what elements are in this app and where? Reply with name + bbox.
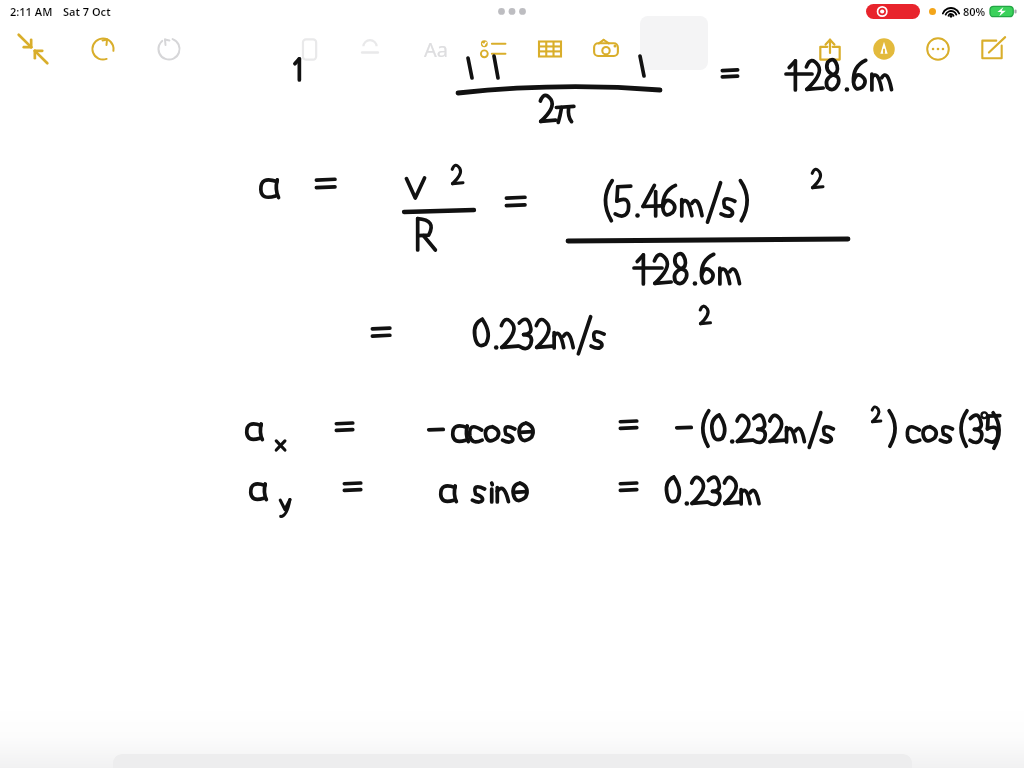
button[interactable]: Page style bbox=[288, 27, 332, 71]
button[interactable]: Checklist bbox=[472, 27, 516, 71]
staticText: Sat 7 Oct bbox=[63, 4, 111, 19]
button[interactable]: Undo bbox=[81, 27, 125, 71]
button[interactable]: Stop screen recording bbox=[866, 4, 920, 19]
button[interactable]: More options bbox=[916, 27, 960, 71]
button[interactable]: Collapse bbox=[11, 27, 55, 71]
button[interactable]: Camera bbox=[584, 27, 628, 71]
staticText: Aa bbox=[424, 36, 448, 63]
staticText: 80% bbox=[963, 4, 986, 19]
button[interactable]: Markup tools bbox=[862, 27, 906, 71]
button[interactable]: Table bbox=[528, 27, 572, 71]
button[interactable]: Share bbox=[808, 27, 852, 71]
button[interactable]: Redo bbox=[147, 27, 191, 71]
button[interactable]: New note bbox=[970, 27, 1014, 71]
button[interactable]: Text format bbox=[414, 27, 458, 71]
button[interactable]: Lock bbox=[348, 27, 392, 71]
staticText: 2:11 AM bbox=[10, 4, 53, 19]
